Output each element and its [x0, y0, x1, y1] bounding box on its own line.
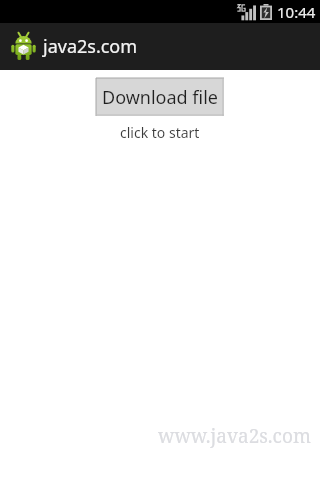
- staticText: www.java2s.com: [158, 423, 311, 449]
- button[interactable]: Download file: [96, 78, 224, 116]
- staticText: java2s.com: [43, 34, 138, 59]
- staticText: 10:44: [277, 2, 316, 22]
- staticText: Download file: [102, 85, 218, 110]
- button[interactable]: App home: [11, 32, 138, 61]
- staticText: click to start: [120, 123, 200, 142]
